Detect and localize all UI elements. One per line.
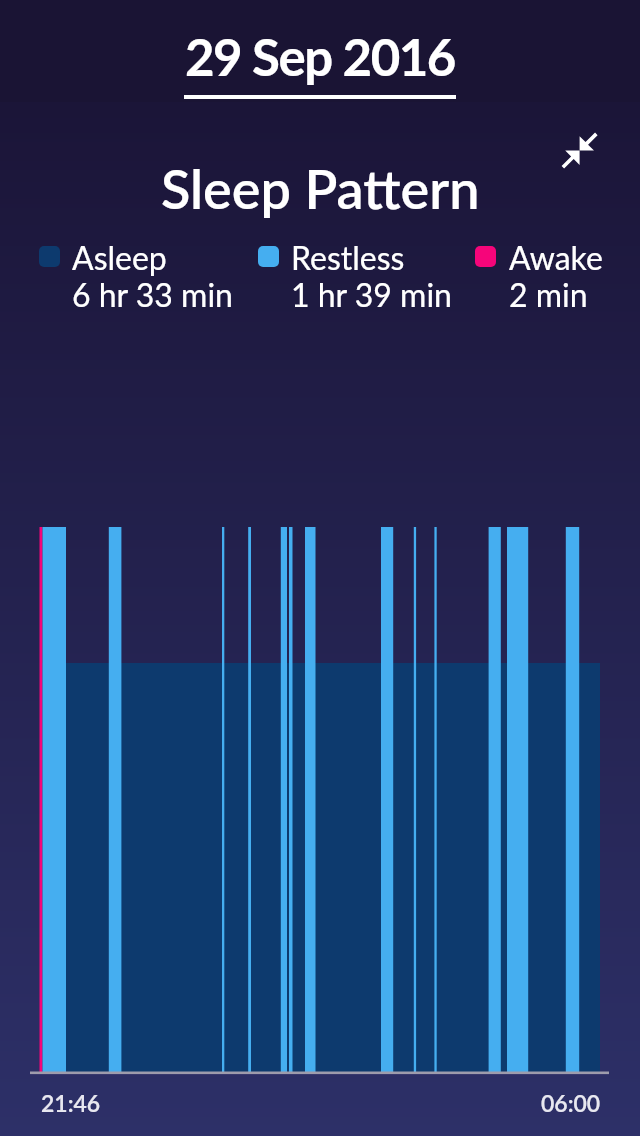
staticText: 21:46 [41,1089,101,1117]
staticText: Awake [509,238,603,276]
staticText: 29 Sep 2016 [185,26,455,87]
staticText: 06:00 [541,1089,601,1117]
staticText: 1 hr 39 min [291,275,452,313]
staticText: Asleep [72,238,167,276]
staticText: 2 min [509,275,588,313]
button[interactable] [548,118,612,182]
staticText: Restless [291,238,405,276]
staticText: 6 hr 33 min [72,275,233,313]
staticText: Sleep Pattern [161,156,480,221]
button[interactable]: 29 Sep 2016 [180,14,460,98]
